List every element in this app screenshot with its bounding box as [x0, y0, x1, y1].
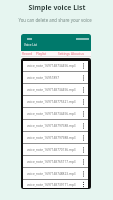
staticText: voice_note_1697148748823.mp3	[27, 172, 76, 176]
staticText: voice_note_1697148797988.mp3	[27, 136, 76, 140]
button[interactable]: voice_note_1697148797588.mp3	[23, 121, 88, 133]
staticText: voice_note_1697148734456.mp3	[27, 88, 76, 92]
button[interactable]: Voice List	[24, 43, 38, 47]
staticText: voice_note_16951897	[27, 76, 59, 80]
button[interactable]: More options	[81, 134, 86, 142]
staticText: voice_note_1697148770136.mp3	[27, 148, 76, 152]
button[interactable]: More options	[81, 110, 86, 118]
button[interactable]: Playlist	[36, 52, 47, 56]
button[interactable]: voice_note_1697148775321.mp3	[23, 97, 88, 109]
staticText: Simple voice List	[28, 3, 86, 12]
button[interactable]: More options	[81, 158, 86, 166]
button[interactable]: voice_note_1697148770136.mp3	[23, 145, 88, 157]
button[interactable]: More options	[81, 98, 86, 106]
button[interactable]: voice_note_1697148734456.mp3	[23, 109, 88, 121]
button[interactable]: More options	[81, 74, 86, 82]
staticText: voice_note_1697148775321.mp3	[27, 100, 76, 104]
button[interactable]: Settings	[58, 52, 70, 56]
staticText: voice_note_1697148765717.mp3	[27, 160, 76, 164]
staticText: voice_note_1697148797588.mp3	[27, 124, 76, 128]
button[interactable]: More options	[81, 181, 86, 188]
staticText: voice_note_1697148734456.mp3	[27, 64, 76, 68]
button[interactable]: About us	[71, 52, 84, 56]
button[interactable]: More options	[81, 122, 86, 130]
button[interactable]: voice_note_1697148734456.mp3	[23, 61, 88, 73]
button[interactable]: voice_note_1697148765717.mp3	[23, 157, 88, 169]
button[interactable]: More options	[81, 146, 86, 154]
button[interactable]: voice_note_1697148734456.mp3	[23, 85, 88, 97]
button[interactable]: voice_note_1697148739171.mp3	[23, 181, 88, 188]
staticText: You can delete and share your voice	[18, 17, 92, 23]
button[interactable]: voice_note_1697148748823.mp3	[23, 169, 88, 181]
button[interactable]: Record	[22, 52, 33, 56]
staticText: voice_note_1697148739171.mp3	[27, 183, 76, 187]
staticText: voice_note_1697148734456.mp3	[27, 112, 76, 116]
button[interactable]: voice_note_1697148797988.mp3	[23, 133, 88, 145]
button[interactable]: More options	[81, 170, 86, 178]
button[interactable]: More options	[81, 86, 86, 94]
button[interactable]: voice_note_16951897	[23, 73, 88, 85]
button[interactable]: More options	[81, 62, 86, 70]
